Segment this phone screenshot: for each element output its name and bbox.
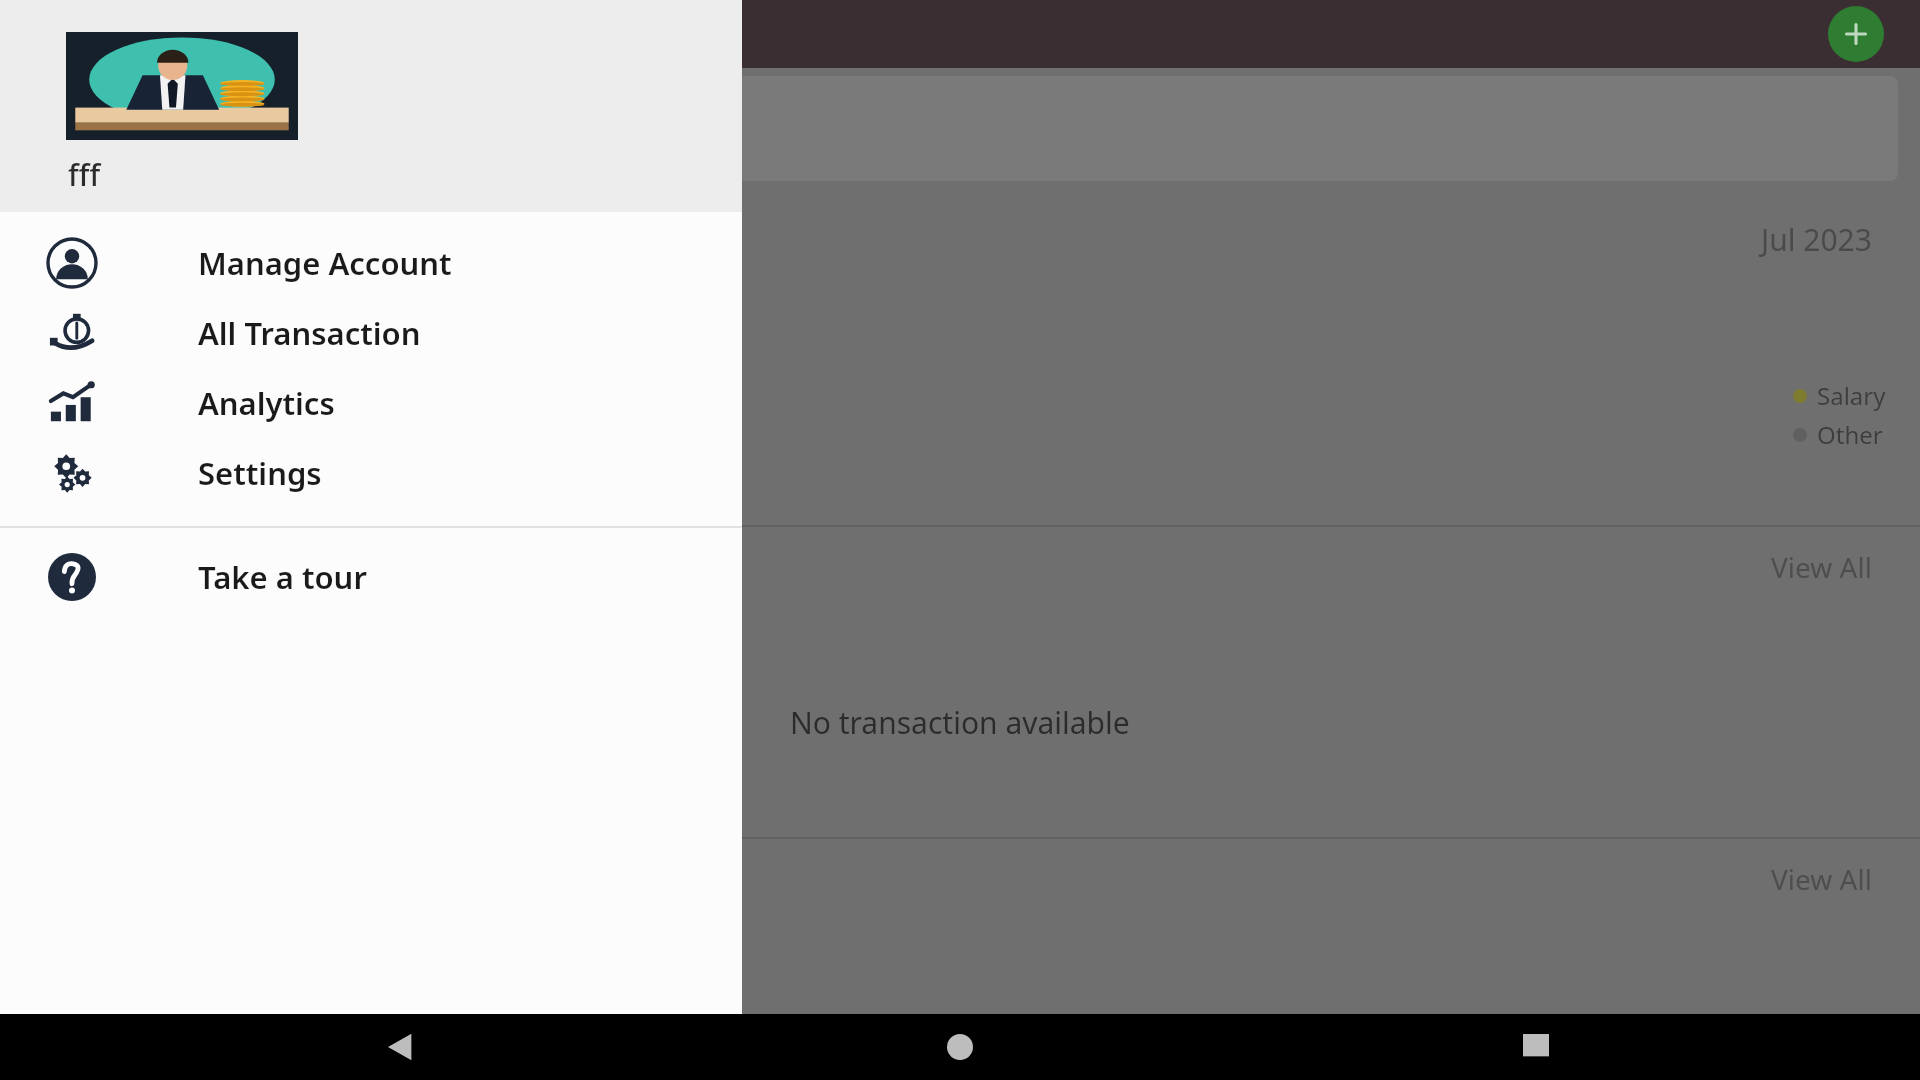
button[interactable]: Recent apps [1512, 1023, 1560, 1071]
staticText: All Transaction [198, 312, 421, 354]
button[interactable]: Add transaction [1828, 6, 1884, 62]
staticText: Daily [158, 85, 219, 120]
staticText: $0.00 [158, 124, 251, 173]
button[interactable]: Analytics [0, 368, 742, 438]
button[interactable]: View All [1771, 548, 1872, 586]
staticText: Salary [1817, 379, 1886, 412]
button[interactable]: Back [376, 1023, 424, 1071]
staticText: Manage Account [198, 242, 452, 284]
staticText: Other [1817, 418, 1883, 451]
staticText: Take a tour [198, 556, 367, 598]
staticText: fff [68, 154, 101, 195]
button[interactable]: View All [1771, 860, 1872, 898]
staticText: Settings [198, 452, 322, 494]
button[interactable]: Settings [0, 438, 742, 508]
staticText: No transaction available [790, 702, 1130, 743]
button[interactable]: Daily [22, 76, 1898, 181]
button[interactable]: Take a tour [0, 542, 742, 612]
button[interactable]: Home [936, 1023, 984, 1071]
button[interactable]: fff [0, 0, 742, 212]
staticText: Analytics [198, 382, 335, 424]
button[interactable]: All Transaction [0, 298, 742, 368]
button[interactable]: Manage Account [0, 228, 742, 298]
staticText: Jul 2023 [1761, 219, 1872, 260]
